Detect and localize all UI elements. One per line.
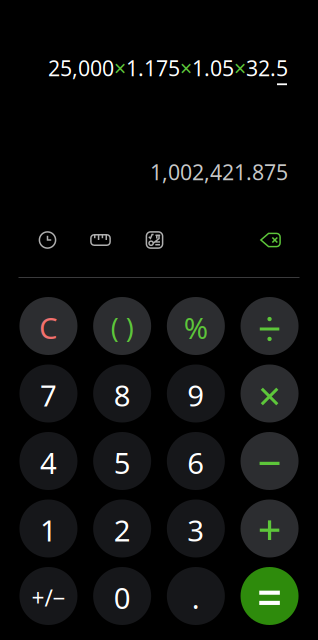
staticText: +/−	[31, 582, 65, 613]
button[interactable]: 3	[167, 499, 225, 557]
staticText: 5	[276, 54, 288, 82]
button[interactable]: Clear	[19, 297, 77, 355]
staticText: 1.05	[192, 54, 234, 82]
staticText: ×	[234, 54, 246, 82]
staticText: 3	[187, 511, 204, 550]
button[interactable]: 2	[93, 499, 151, 557]
staticText: %	[184, 308, 208, 347]
button[interactable]: Percent	[167, 297, 225, 355]
staticText: .	[192, 578, 200, 617]
staticText: 9	[187, 376, 204, 415]
staticText: 0	[114, 578, 131, 617]
button[interactable]: 7	[19, 364, 77, 422]
button[interactable]: 5	[93, 432, 151, 490]
staticText: ( )	[111, 310, 134, 345]
staticText: 32.	[246, 54, 276, 82]
button[interactable]: Multiply	[241, 364, 299, 422]
button[interactable]: Divide	[241, 297, 299, 355]
staticText: 1,002,421.875	[150, 158, 288, 186]
staticText: 5	[114, 443, 131, 482]
button[interactable]: Parentheses	[93, 297, 151, 355]
button[interactable]: 9	[167, 364, 225, 422]
button[interactable]: 8	[93, 364, 151, 422]
button[interactable]: Delete	[254, 225, 286, 255]
staticText: 2	[114, 511, 131, 550]
button[interactable]: Decimal point	[167, 567, 225, 625]
button[interactable]: Equals	[241, 567, 299, 625]
button[interactable]: 4	[19, 432, 77, 490]
button[interactable]: 6	[167, 432, 225, 490]
staticText: 8	[114, 376, 131, 415]
button[interactable]: History	[31, 225, 63, 255]
button[interactable]: Add	[241, 499, 299, 557]
button[interactable]: Scientific keypad	[138, 225, 170, 255]
button[interactable]: Unit converter	[84, 225, 116, 255]
staticText: 25,000	[48, 54, 114, 82]
button[interactable]: Subtract	[241, 432, 299, 490]
staticText: 4	[40, 443, 57, 482]
staticText: 1.175	[126, 54, 180, 82]
button[interactable]: 1	[19, 499, 77, 557]
staticText: ×	[180, 54, 192, 82]
staticText: ×	[114, 54, 126, 82]
button[interactable]: 0	[93, 567, 151, 625]
button[interactable]: Toggle sign	[19, 567, 77, 625]
staticText: 7	[40, 376, 57, 415]
staticText: 6	[187, 443, 204, 482]
staticText: 1	[40, 511, 57, 550]
staticText: C	[39, 308, 58, 347]
